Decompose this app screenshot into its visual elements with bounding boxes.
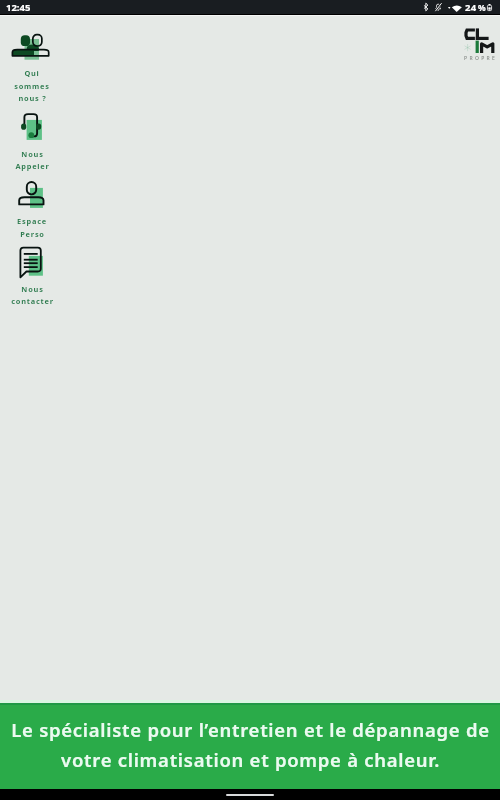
staticText: Appeler bbox=[15, 161, 50, 171]
button[interactable]: Nous contacter bbox=[0, 242, 64, 311]
staticText: Nous bbox=[21, 149, 44, 159]
staticText: sommes bbox=[14, 81, 50, 91]
staticText: Le spécialiste pour l’entretien et le dé… bbox=[11, 717, 490, 772]
staticText: nous ? bbox=[18, 93, 47, 103]
button[interactable]: Nous Appeler bbox=[0, 108, 64, 175]
staticText: Qui bbox=[24, 68, 40, 78]
staticText: Perso bbox=[20, 229, 45, 239]
button[interactable]: Clim Propre logo bbox=[462, 26, 496, 62]
staticText: % bbox=[478, 2, 486, 14]
staticText: Nous bbox=[21, 284, 44, 294]
staticText: PROPRE bbox=[464, 55, 498, 62]
staticText: Espace bbox=[17, 216, 47, 226]
staticText: contacter bbox=[11, 296, 54, 306]
staticText: 12:45 bbox=[6, 1, 31, 14]
button[interactable]: Espace Perso bbox=[0, 176, 64, 243]
staticText: 24 bbox=[465, 1, 477, 14]
button[interactable]: Qui sommes nous ? bbox=[0, 28, 64, 107]
